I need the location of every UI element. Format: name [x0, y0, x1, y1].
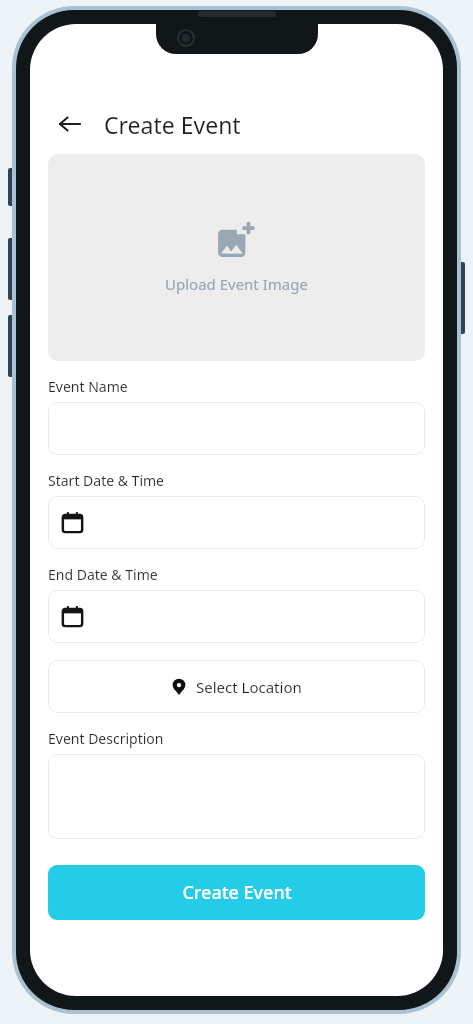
- button[interactable]: Select Location: [48, 660, 425, 713]
- button[interactable]: Upload Event Image: [48, 154, 425, 361]
- button[interactable]: [48, 402, 425, 455]
- staticText: Upload Event Image: [165, 274, 308, 294]
- staticText: Event Description: [48, 729, 164, 748]
- button[interactable]: Back: [52, 106, 88, 142]
- staticText: End Date & Time: [48, 565, 158, 584]
- staticText: Create Event: [104, 109, 241, 140]
- button[interactable]: [48, 496, 425, 549]
- button[interactable]: [48, 590, 425, 643]
- staticText: Event Name: [48, 377, 128, 396]
- button[interactable]: Create Event: [48, 865, 425, 920]
- staticText: Create Event: [182, 880, 292, 905]
- button[interactable]: [48, 754, 425, 839]
- staticText: Start Date & Time: [48, 471, 165, 490]
- staticText: Select Location: [196, 677, 302, 697]
